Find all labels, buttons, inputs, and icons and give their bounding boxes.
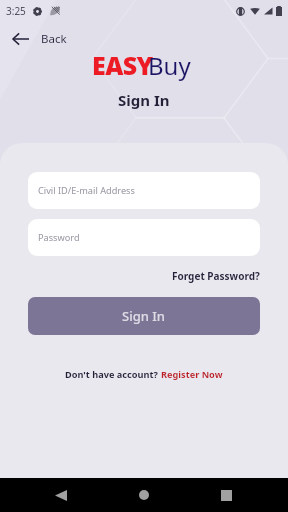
button[interactable]: Register Now xyxy=(161,368,223,381)
button[interactable]: Sign In xyxy=(28,297,260,335)
button[interactable]: Home xyxy=(126,478,162,512)
button[interactable]: Recent apps xyxy=(208,478,244,512)
button[interactable]: Civil ID/E-mail Address xyxy=(28,172,260,209)
button[interactable]: Back xyxy=(0,26,77,52)
button[interactable]: Forget Password? xyxy=(172,269,260,283)
button[interactable]: Back xyxy=(43,478,79,512)
staticText: Civil ID/E-mail Address xyxy=(38,184,135,197)
staticText: Register Now xyxy=(161,368,223,381)
staticText: Back xyxy=(41,31,67,47)
staticText: Sign In xyxy=(118,90,170,110)
staticText: Forget Password? xyxy=(172,269,260,283)
staticText: EASY xyxy=(92,48,153,82)
button[interactable]: Password xyxy=(28,219,260,256)
staticText: Sign In xyxy=(122,307,166,325)
staticText: Password xyxy=(38,231,80,244)
staticText: Don't have account? xyxy=(65,368,161,381)
staticText: Buy xyxy=(148,49,191,82)
staticText: 3:25 xyxy=(6,4,26,18)
other: Back xyxy=(12,33,29,45)
